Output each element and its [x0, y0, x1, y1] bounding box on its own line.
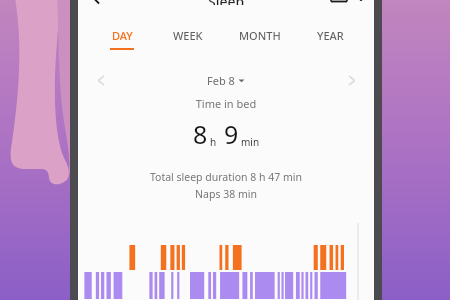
staticText: WEEK: [173, 28, 203, 43]
staticText: min: [241, 135, 260, 149]
button[interactable]: Next day: [330, 71, 374, 89]
staticText: Feb 8: [207, 73, 235, 88]
staticText: YEAR: [317, 28, 344, 43]
button[interactable]: Back: [86, 0, 106, 13]
staticText: Naps 38 min: [78, 187, 374, 201]
staticText: h: [210, 135, 217, 149]
staticText: 8: [193, 117, 208, 151]
staticText: Total sleep duration 8 h 47 min: [78, 170, 374, 184]
button[interactable]: DAY: [90, 28, 154, 54]
button[interactable]: Previous day: [78, 71, 122, 89]
staticText: Time in bed: [78, 96, 374, 111]
button[interactable]: Feb 8: [122, 71, 330, 89]
button[interactable]: MONTH: [221, 28, 298, 54]
staticText: 9: [224, 117, 239, 151]
button[interactable]: WEEK: [154, 28, 221, 54]
button[interactable]: Sleep mode: [328, 0, 350, 13]
staticText: Sleep: [208, 0, 245, 5]
button[interactable]: YEAR: [298, 28, 362, 54]
staticText: MONTH: [239, 28, 281, 43]
staticText: DAY: [112, 28, 133, 43]
button[interactable]: More options: [352, 0, 370, 13]
